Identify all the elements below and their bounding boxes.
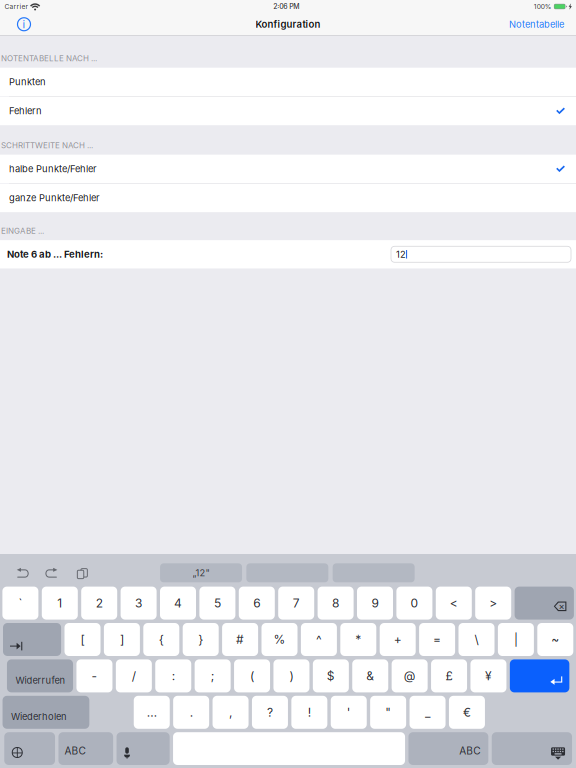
button[interactable]: Undo (8, 562, 37, 584)
button[interactable]: Punkten (0, 68, 576, 96)
button[interactable]: ) (273, 659, 309, 692)
button[interactable]: halbe Punkte/Fehler (0, 155, 576, 183)
staticText: 2 (96, 596, 103, 610)
staticText: € (463, 705, 471, 719)
button[interactable]: ! (291, 696, 327, 729)
staticText: i (22, 18, 25, 31)
button[interactable]: … (134, 696, 170, 729)
button[interactable]: & (352, 659, 388, 692)
staticText: ^ (316, 632, 322, 647)
button[interactable]: . (173, 696, 209, 729)
button[interactable]: Tab (3, 623, 61, 656)
staticText: Wiederholen (11, 711, 67, 722)
staticText: $ (327, 669, 335, 683)
button[interactable]: Redo (37, 562, 66, 584)
button[interactable]: @ (392, 659, 428, 692)
button[interactable]: Notentabelle (497, 14, 576, 35)
button[interactable]: Backspace (515, 587, 574, 620)
button[interactable]: " (370, 696, 406, 729)
button[interactable]: * (340, 623, 376, 656)
button[interactable]: 5 (199, 587, 235, 620)
button[interactable]: , (213, 696, 249, 729)
button[interactable]: ^ (301, 623, 337, 656)
button[interactable]: Space (173, 732, 405, 765)
button[interactable]: 6 (239, 587, 275, 620)
button[interactable]: Hide keyboard (492, 732, 572, 765)
staticText: 8 (332, 596, 339, 610)
staticText: ¥ (485, 669, 492, 683)
staticText: " (385, 705, 391, 719)
staticText: … (147, 705, 157, 719)
staticText: SCHRITTWEITE NACH ... (1, 140, 93, 150)
button[interactable]: ¥ (470, 659, 506, 692)
staticText: | (514, 632, 518, 647)
button[interactable]: / (116, 659, 152, 692)
button[interactable]: 8 (318, 587, 354, 620)
button[interactable]: < (436, 587, 472, 620)
button[interactable]: | (498, 623, 534, 656)
button[interactable]: = (419, 623, 455, 656)
staticText: / (132, 669, 136, 683)
button[interactable]: - (76, 659, 112, 692)
button[interactable]: Next keyboard (4, 732, 55, 765)
staticText: 5 (214, 596, 221, 610)
button[interactable]: „12" (160, 563, 242, 582)
button[interactable]: Paste (66, 562, 95, 584)
button[interactable]: } (183, 623, 219, 656)
staticText: # (236, 632, 244, 647)
staticText: Konfiguration (255, 18, 320, 30)
button[interactable]: ; (195, 659, 231, 692)
button[interactable]: Info (9, 13, 39, 35)
staticText: Carrier (4, 2, 28, 11)
staticText: } (198, 632, 203, 647)
button[interactable]: Fehlern (0, 97, 576, 125)
button[interactable]: \ (458, 623, 494, 656)
button[interactable]: 1 (42, 587, 78, 620)
staticText: × (559, 601, 565, 612)
button[interactable]: ] (104, 623, 140, 656)
button[interactable]: 0 (396, 587, 432, 620)
button[interactable]: £ (431, 659, 467, 692)
button[interactable]: € (449, 696, 485, 729)
button[interactable]: Return (510, 659, 569, 692)
button[interactable]: $ (313, 659, 349, 692)
button[interactable]: + (380, 623, 416, 656)
staticText: * (355, 632, 361, 647)
button[interactable]: 4 (160, 587, 196, 620)
button[interactable]: ganze Punkte/Fehler (0, 184, 576, 212)
button[interactable]: ` (2, 587, 38, 620)
staticText: % (273, 632, 285, 647)
button[interactable]: ( (234, 659, 270, 692)
button[interactable]: ABC (58, 732, 113, 765)
staticText: NOTENTABELLE NACH ... (1, 53, 97, 63)
staticText: 0 (410, 596, 418, 610)
button[interactable]: 2 (81, 587, 117, 620)
staticText: > (489, 596, 497, 610)
staticText: ? (267, 705, 273, 719)
button[interactable]: 9 (357, 587, 393, 620)
button[interactable]: ? (252, 696, 288, 729)
button[interactable]: Wiederholen (3, 696, 89, 729)
staticText: : (172, 669, 175, 683)
button[interactable]: { (143, 623, 179, 656)
button[interactable]: ~ (537, 623, 573, 656)
button[interactable]: Widerrufen (7, 659, 73, 692)
staticText: ! (308, 705, 311, 719)
staticText: „12" (192, 567, 209, 578)
staticText: £ (445, 669, 452, 683)
button[interactable]: % (261, 623, 297, 656)
button[interactable]: 7 (278, 587, 314, 620)
button[interactable]: Dictate (117, 732, 170, 765)
button[interactable]: # (222, 623, 258, 656)
button[interactable]: 3 (121, 587, 157, 620)
button[interactable]: _ (409, 696, 445, 729)
button[interactable]: [ (64, 623, 100, 656)
button[interactable]: : (155, 659, 191, 692)
button[interactable]: ABC (408, 732, 488, 765)
staticText: { (159, 632, 164, 647)
button[interactable]: > (475, 587, 511, 620)
button[interactable]: ' (331, 696, 367, 729)
staticText: = (433, 632, 441, 647)
